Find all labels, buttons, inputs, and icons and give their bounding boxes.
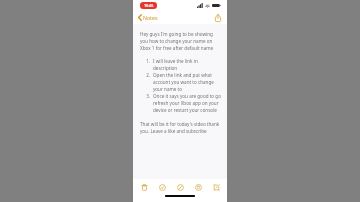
button[interactable]: Camera [192,181,204,193]
staticText: I will leave the link in description [153,58,221,71]
button[interactable]: Checklist [156,181,168,193]
staticText: That will be it for today's video thank … [140,121,221,134]
button[interactable]: Markup [174,181,186,193]
staticText: 1. [145,58,150,64]
staticText: Hey guys I'm going to be showing you how… [140,31,221,51]
button[interactable]: Delete [138,181,150,193]
staticText: Notes [143,14,158,21]
button[interactable]: Notes [137,13,159,22]
button[interactable]: New note [210,181,222,193]
staticText: 2. [145,72,150,78]
staticText: Once it says you are good to go refresh … [153,93,221,113]
staticText: Open the link and put what account you w… [153,72,221,92]
staticText: 10:46 [144,3,154,8]
button[interactable]: Share [213,13,222,22]
staticText: 3. [145,93,150,99]
